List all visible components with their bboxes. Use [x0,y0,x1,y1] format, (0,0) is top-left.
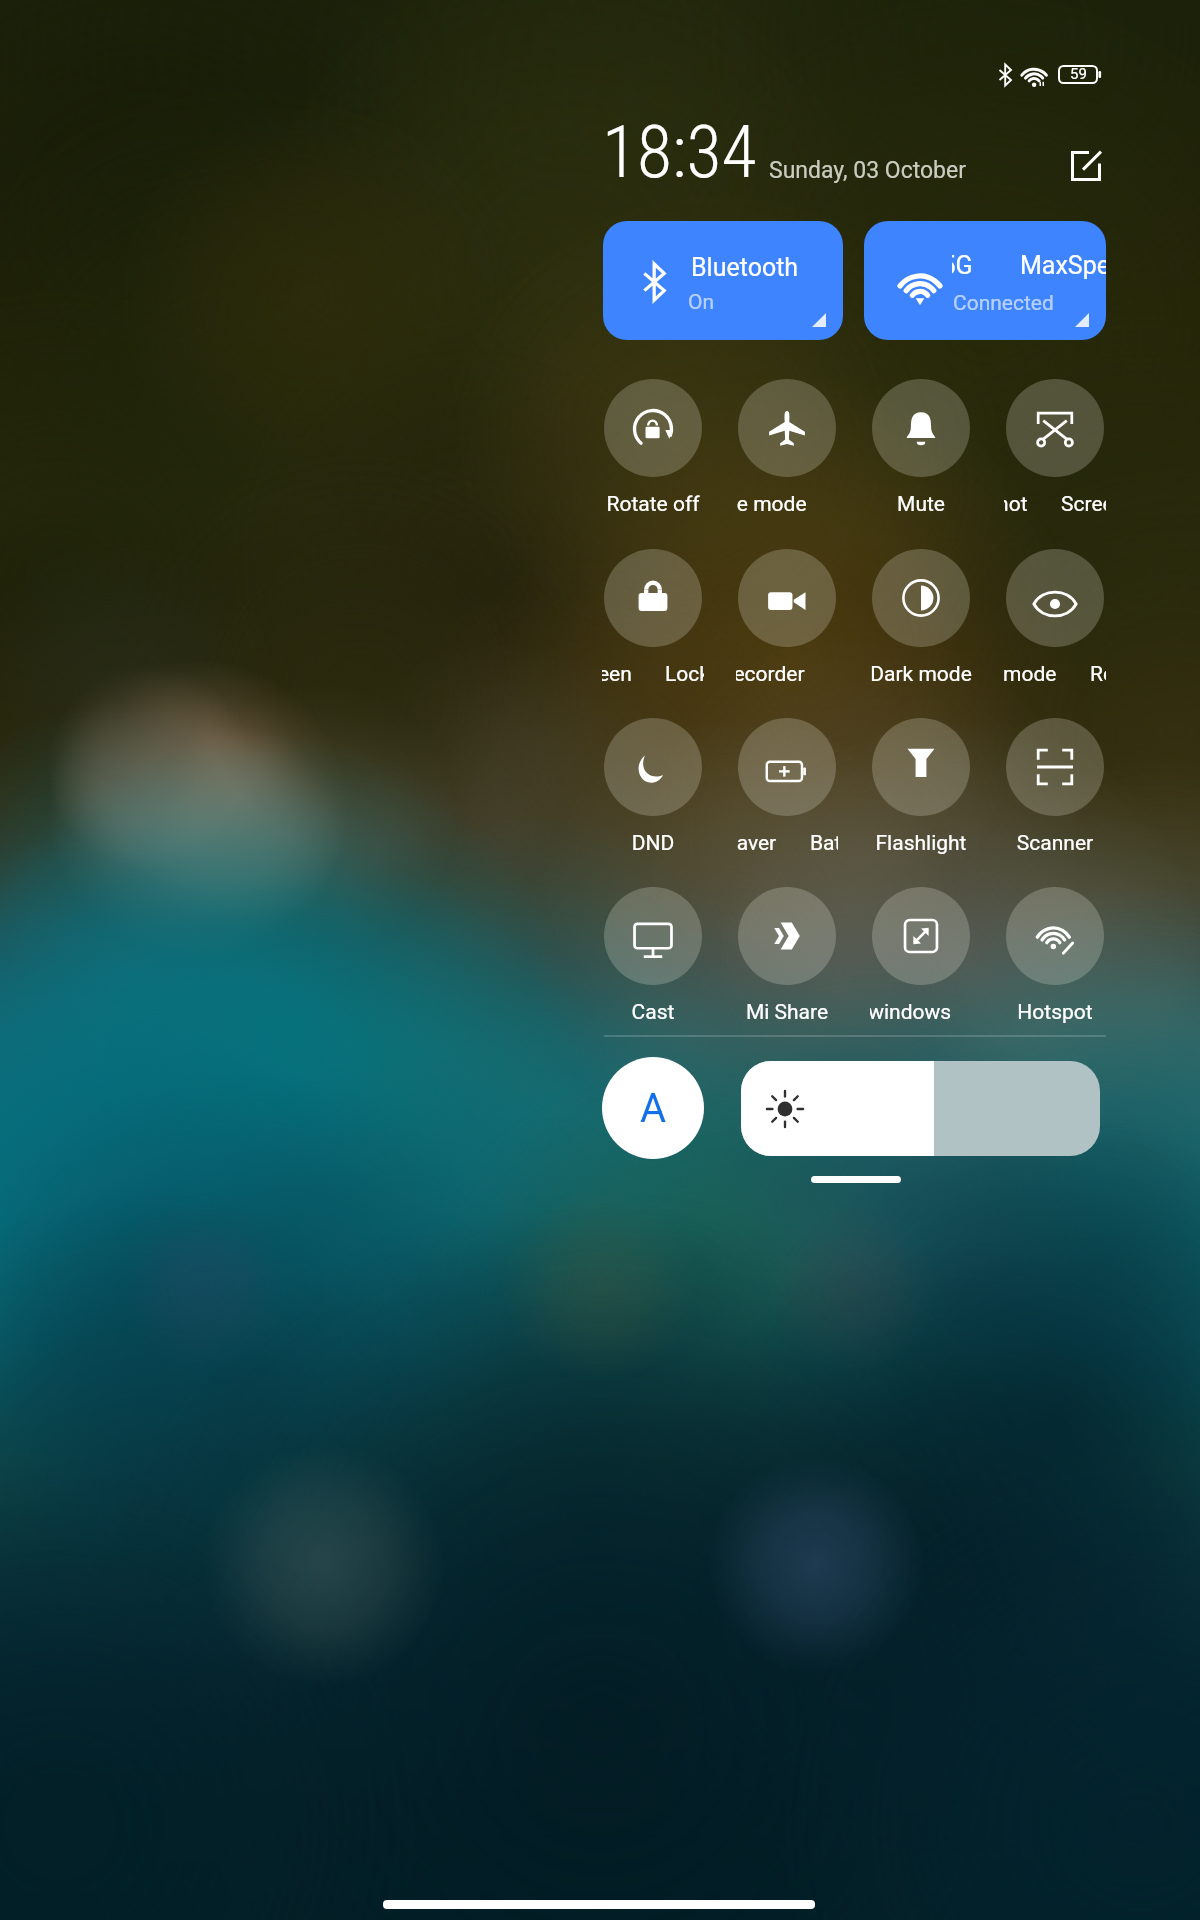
staticText: Connected [953,291,1054,316]
staticText: 18:34 [602,110,757,194]
staticText: Scanner [1004,831,1106,856]
button[interactable]: Auto brightness [602,1057,704,1159]
staticText: Lock screen [665,662,704,687]
staticText: Screenshot [1004,492,1028,517]
staticText: On [688,290,715,315]
staticText: Second windows [870,1000,952,1025]
button[interactable]: Bluetooth [603,221,843,340]
staticText: Dark mode [870,662,972,687]
staticText: Flashlight [870,831,972,856]
staticText: Screenshot [1061,492,1106,517]
button[interactable]: Edit quick settings [1060,140,1112,192]
staticText: Reading mode [1090,662,1106,687]
staticText: 59 [1070,65,1087,83]
staticText: MaxSpeed 5G [1020,251,1106,280]
staticText: Mi Share [736,1000,838,1025]
staticText: MaxSpeed 5G [952,251,973,280]
staticText: Screen recorder [736,662,805,687]
staticText: A [640,1085,667,1132]
staticText: Hotspot [1004,1000,1106,1025]
staticText: Rotate off [602,492,704,517]
staticText: Cast [602,1000,704,1025]
button[interactable]: Brightness [741,1061,1100,1156]
staticText: Mute [870,492,972,517]
staticText: Airplane mode [736,492,807,517]
button[interactable]: MaxSpeed 5G [864,221,1106,340]
staticText: Battery saver [810,831,838,856]
staticText: Lock screen [602,662,632,687]
staticText: Bluetooth [691,253,799,282]
staticText: DND [602,831,704,856]
staticText: Battery saver [736,831,777,856]
staticText: Sunday, 03 October [769,157,967,184]
staticText: Reading mode [1004,662,1057,687]
